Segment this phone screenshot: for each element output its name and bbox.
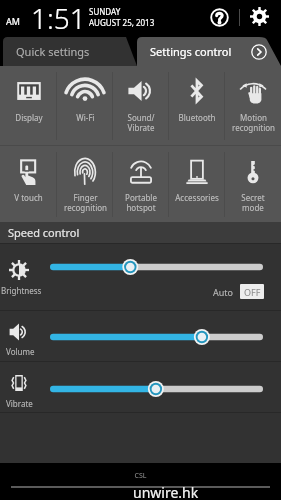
button[interactable]: Wi-Fi (57, 66, 113, 145)
staticText: Speed control (8, 225, 80, 240)
staticText: Finger recognition (64, 192, 107, 213)
staticText: AM (6, 15, 20, 27)
button[interactable]: V touch (0, 146, 57, 222)
staticText: Secret mode (241, 192, 265, 213)
staticText: V touch (14, 192, 43, 203)
staticText: Brightness (1, 285, 42, 296)
staticText: Portable hotspot (125, 192, 157, 213)
button[interactable]: Portable hotspot (113, 146, 169, 222)
staticText: OFF (244, 286, 261, 298)
staticText: 1:51 (31, 0, 86, 36)
button[interactable]: Motion recognition (225, 66, 281, 145)
staticText: CSL (0, 471, 281, 481)
button[interactable]: Vibrate (0, 362, 281, 412)
staticText: Vibrate (6, 398, 33, 409)
button[interactable]: Bluetooth (169, 66, 225, 145)
button[interactable]: Settings (245, 2, 274, 31)
staticText: Auto (213, 286, 234, 298)
staticText: Settings control (150, 44, 232, 59)
staticText: Quick settings (16, 44, 90, 59)
button[interactable]: Volume (0, 311, 281, 361)
staticText: Volume (6, 346, 35, 357)
staticText: Sound/ Vibrate (127, 112, 155, 133)
staticText: Motion recognition (232, 112, 275, 133)
button[interactable]: Settings control (0, 37, 281, 66)
staticText: Wi-Fi (76, 112, 95, 123)
button[interactable]: Secret mode (225, 146, 281, 222)
staticText: Accessories (175, 192, 219, 203)
button[interactable]: Help (205, 3, 234, 32)
button[interactable]: OFF (240, 284, 264, 299)
staticText: SUNDAY (89, 6, 121, 17)
staticText: Bluetooth (178, 112, 216, 123)
button[interactable]: Finger recognition (57, 146, 113, 222)
button[interactable]: Display (0, 66, 57, 145)
staticText: AUGUST 25, 2013 (89, 17, 155, 28)
button[interactable]: Brightness (0, 244, 281, 310)
button[interactable]: Quick settings (0, 37, 281, 66)
button[interactable]: Accessories (169, 146, 225, 222)
staticText: Display (15, 112, 43, 123)
staticText: unwire.hk (133, 483, 199, 500)
button[interactable]: Sound/ Vibrate (113, 66, 169, 145)
